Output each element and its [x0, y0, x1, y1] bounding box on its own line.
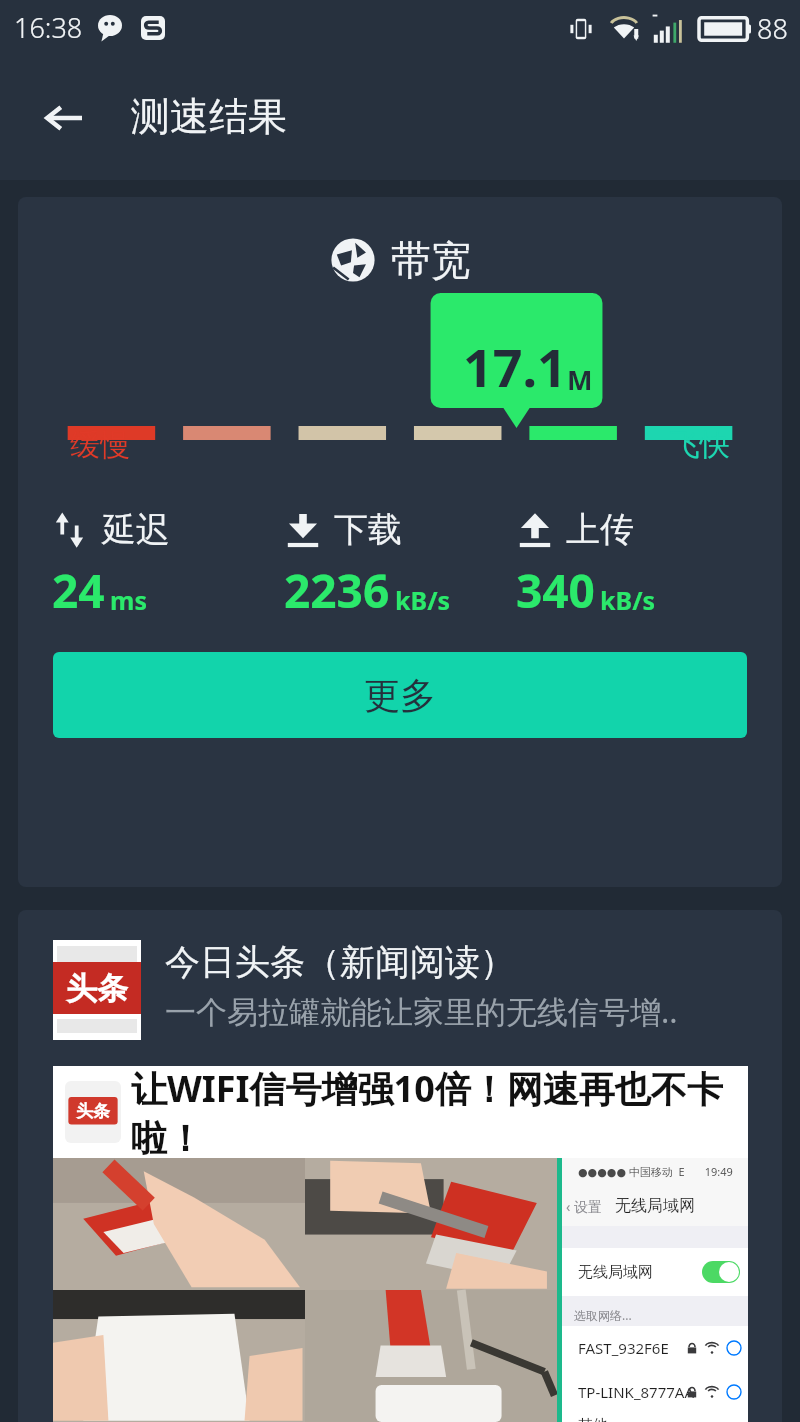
- staticText: kB/s: [395, 583, 451, 617]
- staticText: 选取网络...: [574, 1307, 632, 1323]
- staticText: 今日头条（新闻阅读）: [165, 940, 515, 984]
- staticText: 下载: [334, 508, 402, 551]
- staticText: 缓慢: [70, 426, 130, 464]
- staticText: 延迟: [102, 508, 170, 551]
- staticText: 17.1: [463, 331, 567, 402]
- staticText: 飞快: [670, 426, 730, 464]
- staticText: 其他...: [578, 1414, 621, 1422]
- staticText: 更多: [364, 673, 436, 718]
- button[interactable]: 更多: [53, 652, 747, 738]
- staticText: 无线局域网: [578, 1263, 653, 1282]
- staticText: FAST_932F6E: [578, 1338, 669, 1358]
- staticText: 带宽: [391, 235, 471, 285]
- staticText: M: [567, 361, 593, 398]
- staticText: ●●●●● 中国移动 E 19:49: [578, 1164, 733, 1179]
- staticText: 88: [757, 10, 788, 47]
- staticText: 2236: [284, 559, 390, 622]
- staticText: 无线局域网: [615, 1196, 695, 1216]
- staticText: TP-LINK_8777AA: [578, 1382, 695, 1402]
- staticText: 24: [52, 559, 105, 622]
- staticText: 一个易拉罐就能让家里的无线信号增..: [165, 990, 678, 1032]
- staticText: 头条: [66, 969, 128, 1008]
- staticText: 16:38: [14, 9, 83, 46]
- staticText: 上传: [566, 508, 634, 551]
- staticText: ‹ 设置: [566, 1197, 602, 1216]
- button[interactable]: 头条: [18, 910, 782, 1422]
- staticText: 340: [516, 559, 595, 622]
- staticText: 头条: [76, 1101, 110, 1122]
- staticText: ms: [110, 583, 147, 617]
- button[interactable]: Back: [30, 84, 98, 152]
- staticText: 让WIFI信号增强10倍！网速再也不卡啦！: [131, 1064, 748, 1156]
- staticText: 测速结果: [131, 92, 287, 141]
- staticText: kB/s: [600, 583, 656, 617]
